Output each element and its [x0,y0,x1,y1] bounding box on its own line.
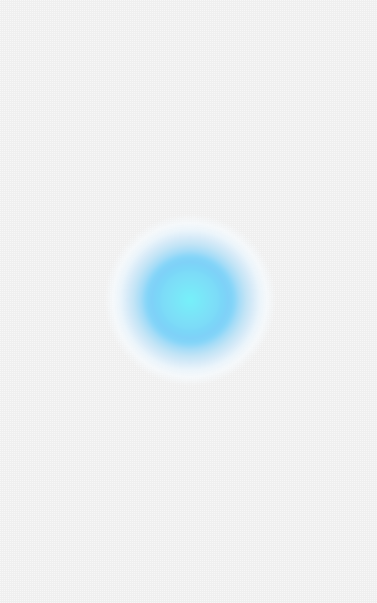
button[interactable]: Listening [104,214,276,386]
